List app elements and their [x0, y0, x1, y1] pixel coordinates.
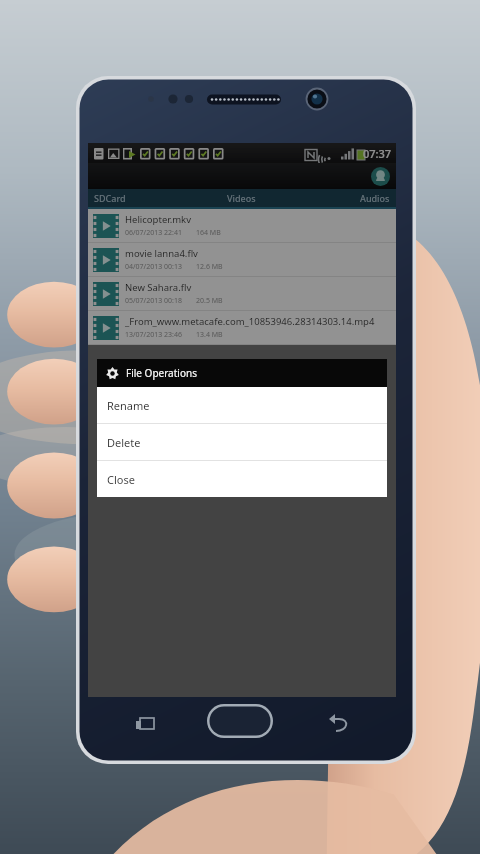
- staticText: Audios: [360, 192, 390, 204]
- staticText: 12.6 MB: [196, 262, 223, 272]
- staticText: 05/07/2013 00:18: [125, 296, 182, 306]
- button[interactable]: _From_www.metacafe.com_10853946.28314303…: [88, 311, 396, 345]
- staticText: SDCard: [94, 192, 126, 204]
- staticText: 164 MB: [196, 228, 221, 238]
- button[interactable]: Delete: [97, 424, 387, 461]
- button[interactable]: Rename: [97, 387, 387, 424]
- button[interactable]: movie lanna4.flv: [88, 243, 396, 277]
- staticText: File Operations: [126, 366, 197, 380]
- staticText: New Sahara.flv: [125, 281, 192, 294]
- staticText: _From_www.metacafe.com_10853946.28314303…: [125, 315, 375, 328]
- button[interactable]: Videos: [190, 189, 293, 207]
- staticText: 20.5 MB: [196, 296, 223, 306]
- staticText: 07:37: [363, 146, 392, 161]
- staticText: 04/07/2013 00:13: [125, 262, 182, 272]
- staticText: 13.4 MB: [196, 330, 223, 340]
- staticText: Delete: [107, 435, 141, 450]
- staticText: 13/07/2013 23:46: [125, 330, 182, 340]
- staticText: Rename: [107, 398, 150, 413]
- staticText: Videos: [227, 192, 256, 204]
- staticText: Close: [107, 472, 135, 487]
- button[interactable]: SDCard: [88, 189, 190, 207]
- button[interactable]: Account: [371, 167, 390, 186]
- button[interactable]: Audios: [293, 189, 396, 207]
- button[interactable]: Close: [97, 461, 387, 497]
- staticText: movie lanna4.flv: [125, 247, 198, 260]
- staticText: Helicopter.mkv: [125, 213, 191, 226]
- staticText: 06/07/2013 22:41: [125, 228, 182, 238]
- button[interactable]: Helicopter.mkv: [88, 209, 396, 243]
- button[interactable]: New Sahara.flv: [88, 277, 396, 311]
